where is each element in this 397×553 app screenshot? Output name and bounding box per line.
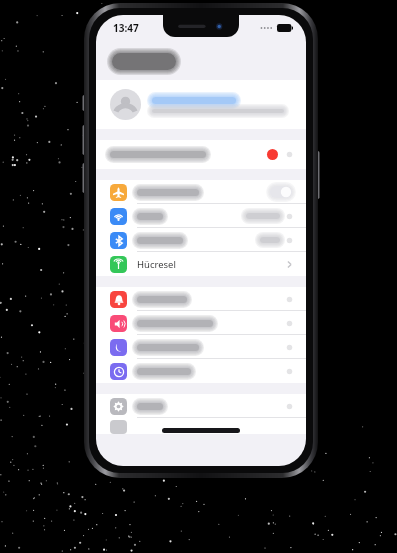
button[interactable]: Screen Time (96, 359, 306, 383)
button[interactable]: Airplane Mode (96, 180, 306, 204)
staticText: Hücresel (137, 258, 176, 271)
button[interactable] (96, 140, 306, 169)
button[interactable]: Wi-Fi (96, 204, 306, 228)
button[interactable]: Notifications (96, 287, 306, 311)
button[interactable] (96, 80, 306, 129)
button[interactable]: Focus (96, 335, 306, 359)
button[interactable]: Hücresel (96, 252, 306, 276)
staticText: 13:47 (113, 21, 139, 35)
button[interactable]: Bluetooth (96, 228, 306, 252)
button[interactable]: General (96, 394, 306, 418)
button[interactable]: Sounds and Haptics (96, 311, 306, 335)
